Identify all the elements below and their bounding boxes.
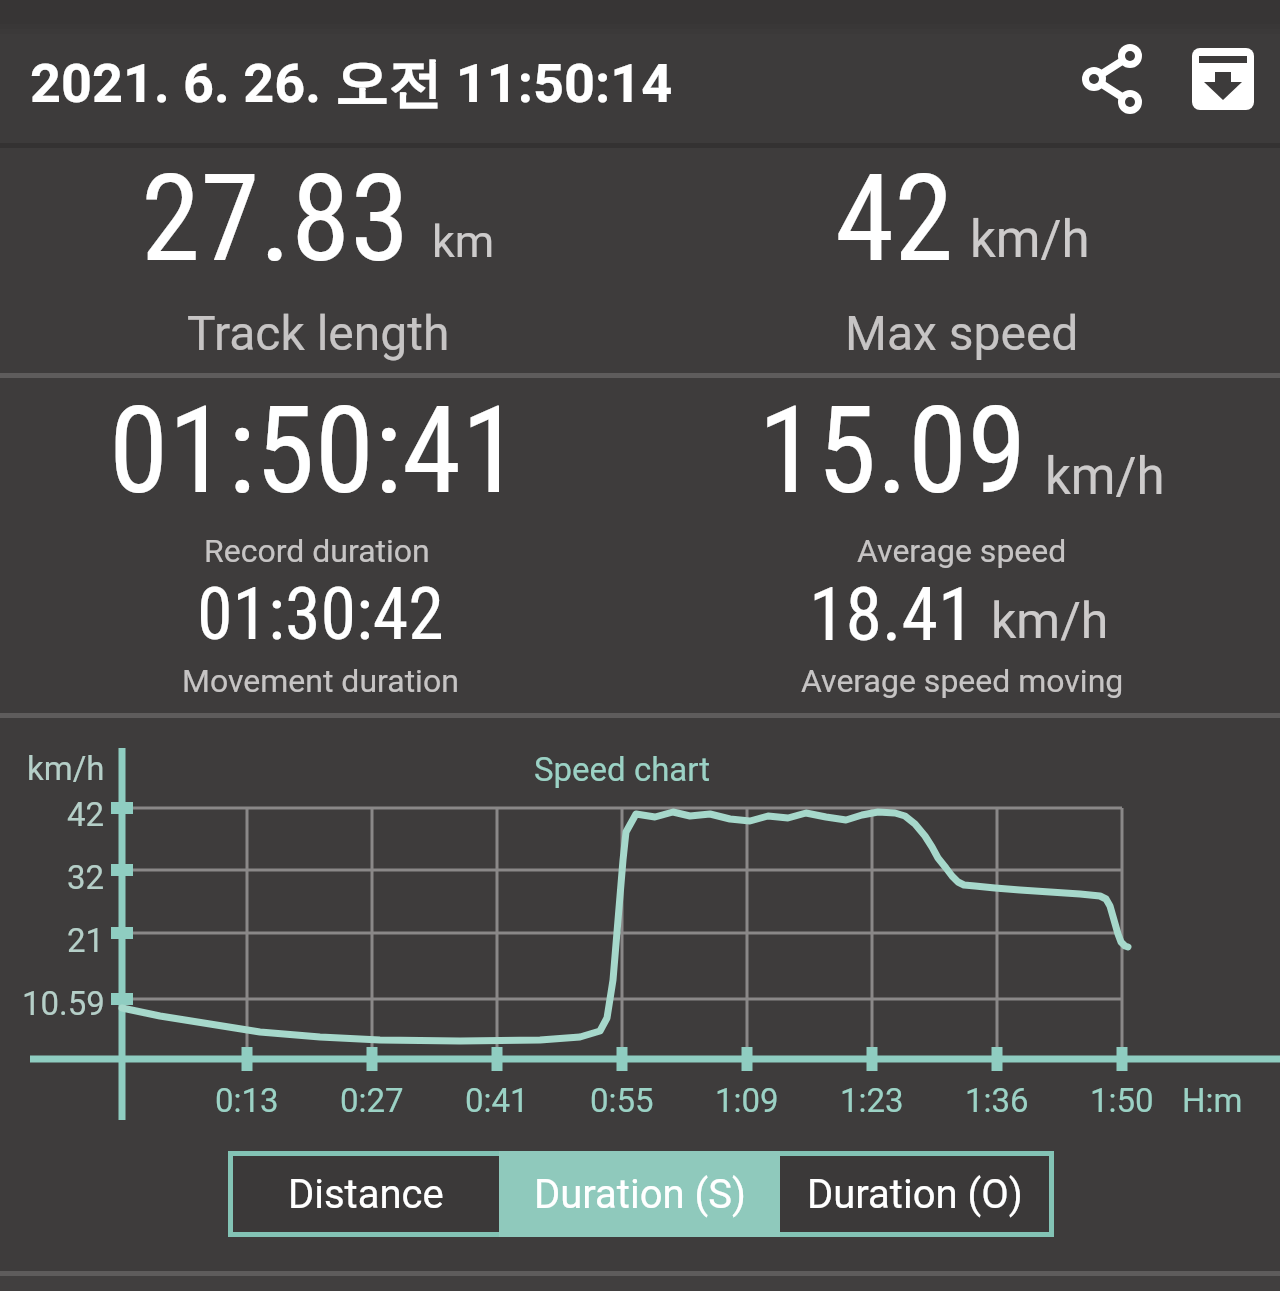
staticText: Track length (187, 305, 450, 361)
staticText: Distance (288, 1171, 444, 1218)
staticText: 0:27 (340, 1081, 404, 1120)
staticText: Average speed moving (801, 662, 1124, 700)
staticText: km/h (970, 210, 1090, 270)
staticText: 0:55 (590, 1081, 654, 1120)
staticText: 27.83 (141, 149, 410, 290)
staticText: Movement duration (182, 662, 459, 700)
staticText: Duration (S) (534, 1171, 746, 1218)
staticText: 1:50 (1090, 1081, 1154, 1120)
staticText: H:m (1182, 1081, 1243, 1120)
staticText: km (432, 215, 495, 268)
staticText: 42 (67, 795, 105, 834)
staticText: km/h (991, 592, 1109, 651)
staticText: Average speed (857, 532, 1067, 570)
button[interactable] (1192, 48, 1254, 110)
button[interactable]: Duration (S) (499, 1151, 780, 1237)
staticText: 01:50:41 (109, 381, 521, 522)
staticText: Duration (O) (807, 1171, 1023, 1218)
staticText: 2021. 6. 26. 오전 11:50:14 (30, 50, 673, 118)
staticText: km/h (27, 749, 105, 788)
staticText: 42 (835, 149, 954, 290)
staticText: 1:23 (840, 1081, 904, 1120)
staticText: 32 (67, 858, 105, 897)
button[interactable] (1066, 34, 1156, 124)
button[interactable]: Distance (233, 1156, 499, 1232)
staticText: 01:30:42 (197, 572, 444, 656)
button[interactable]: Duration (O) (780, 1156, 1049, 1232)
staticText: Record duration (204, 532, 430, 570)
staticText: Speed chart (534, 750, 711, 789)
staticText: 21 (67, 921, 105, 960)
staticText: 1:09 (715, 1081, 779, 1120)
staticText: 10.59 (22, 984, 105, 1023)
staticText: Max speed (845, 305, 1079, 361)
staticText: 18.41 (809, 571, 975, 658)
staticText: 15.09 (758, 381, 1027, 522)
staticText: 0:41 (465, 1081, 529, 1120)
staticText: 0:13 (215, 1081, 279, 1120)
staticText: km/h (1045, 447, 1165, 507)
staticText: 1:36 (965, 1081, 1029, 1120)
